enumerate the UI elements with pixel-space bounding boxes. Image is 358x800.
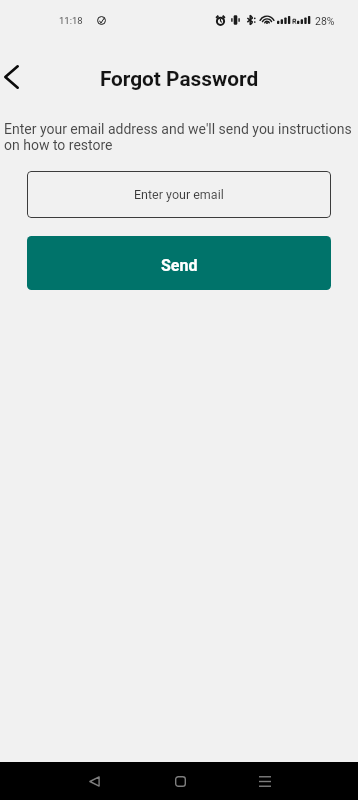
staticText: 28% xyxy=(315,15,335,27)
button[interactable]: Recent apps xyxy=(243,766,287,796)
button[interactable]: Send xyxy=(27,236,331,290)
button[interactable]: Back xyxy=(0,55,43,99)
staticText: Send xyxy=(161,256,198,275)
staticText: Enter your email xyxy=(134,187,224,202)
button[interactable]: Enter your email xyxy=(27,171,331,218)
button[interactable]: Back xyxy=(72,766,116,796)
staticText: Forgot Password xyxy=(0,67,358,91)
button[interactable]: Home xyxy=(158,766,202,796)
staticText: Enter your email address and we'll send … xyxy=(4,121,354,154)
staticText: 11:18 xyxy=(59,15,83,26)
